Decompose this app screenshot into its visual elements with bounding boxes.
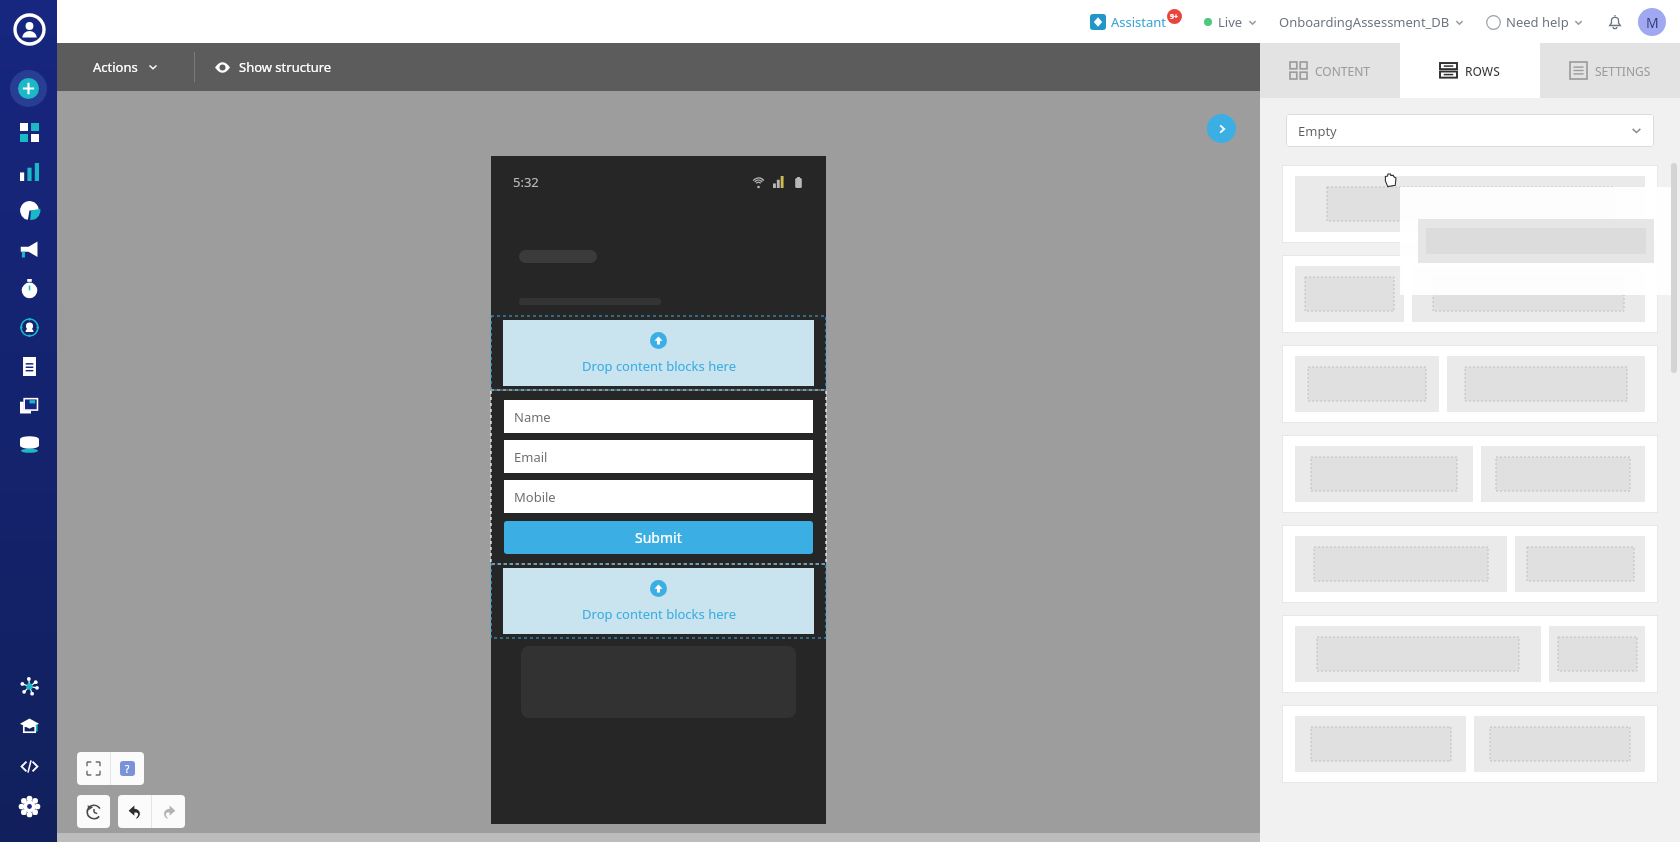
button[interactable]: Assistant	[1085, 13, 1187, 31]
staticText: Email	[514, 448, 548, 466]
button[interactable]: Name	[504, 400, 813, 433]
button[interactable]: Submit	[504, 521, 813, 554]
button[interactable]: Show structure	[195, 43, 352, 91]
button[interactable]: Email	[504, 440, 813, 473]
button[interactable]: Forms	[15, 352, 43, 380]
staticText: ?	[125, 762, 130, 776]
button[interactable]: Data	[15, 430, 43, 458]
staticText: ROWS	[1465, 63, 1500, 79]
button[interactable]: Fit to screen	[77, 752, 110, 785]
button[interactable]: ROWS	[1400, 43, 1540, 98]
button[interactable]: Reports	[15, 157, 43, 185]
button[interactable]: OnboardingAssessment_DB	[1274, 13, 1469, 31]
button[interactable]: Need help	[1481, 13, 1588, 31]
button[interactable]: Empty	[1286, 114, 1654, 147]
button[interactable]: Collapse panel	[1207, 114, 1236, 143]
staticText: Drop content blocks here	[582, 605, 736, 623]
button[interactable]: Drop content blocks here	[491, 316, 826, 390]
button[interactable]: Developer	[9, 746, 49, 786]
button[interactable]	[1282, 435, 1658, 513]
button[interactable]: SETTINGS	[1540, 43, 1680, 98]
button[interactable]: Drop content blocks here	[491, 564, 826, 638]
button[interactable]: Name	[491, 390, 826, 564]
button[interactable]: Campaigns	[15, 235, 43, 263]
button[interactable]: Help	[111, 752, 144, 785]
button[interactable]: Drop content blocks here	[503, 568, 814, 634]
button[interactable]: M	[1638, 8, 1666, 36]
staticText: Mobile	[514, 488, 556, 506]
button[interactable]: Mobile	[504, 480, 813, 513]
staticText: SETTINGS	[1595, 63, 1651, 79]
button[interactable]: Redo	[152, 795, 185, 828]
button[interactable]: Audience	[15, 313, 43, 341]
staticText: Name	[514, 408, 551, 426]
button[interactable]: Actions	[57, 43, 194, 91]
staticText: Empty	[1298, 122, 1337, 140]
staticText: Live	[1218, 13, 1243, 31]
staticText: Need help	[1506, 13, 1569, 31]
button[interactable]	[1282, 165, 1658, 243]
staticText: 9+	[1170, 12, 1179, 22]
button[interactable]: Create	[10, 70, 47, 107]
button[interactable]	[1282, 255, 1658, 333]
button[interactable]: CONTENT	[1260, 43, 1400, 98]
button[interactable]	[1282, 705, 1658, 783]
button[interactable]: Notifications	[1602, 9, 1628, 35]
staticText: M	[1646, 13, 1659, 32]
button[interactable]: Profile	[6, 6, 52, 52]
staticText: CONTENT	[1315, 63, 1370, 79]
staticText: Actions	[93, 58, 138, 76]
button[interactable]: Automation	[15, 274, 43, 302]
button[interactable]: Undo	[118, 795, 151, 828]
button[interactable]: Live	[1199, 13, 1262, 31]
staticText: Assistant	[1111, 13, 1167, 31]
button[interactable]: Dashboard	[15, 118, 43, 146]
button[interactable]	[1282, 525, 1658, 603]
staticText: Submit	[635, 528, 682, 547]
staticText: OnboardingAssessment_DB	[1279, 13, 1450, 31]
button[interactable]	[1282, 615, 1658, 693]
button[interactable]: Settings	[9, 786, 49, 826]
staticText: Show structure	[239, 58, 332, 76]
button[interactable]: Academy	[9, 706, 49, 746]
button[interactable]: History	[77, 795, 110, 828]
button[interactable]: Pages	[15, 391, 43, 419]
button[interactable]: Drop content blocks here	[503, 320, 814, 386]
staticText: Drop content blocks here	[582, 357, 736, 375]
button[interactable]: Integrations	[9, 666, 49, 706]
button[interactable]: Analytics	[15, 196, 43, 224]
staticText: 5:32	[513, 173, 539, 191]
button[interactable]	[1282, 345, 1658, 423]
